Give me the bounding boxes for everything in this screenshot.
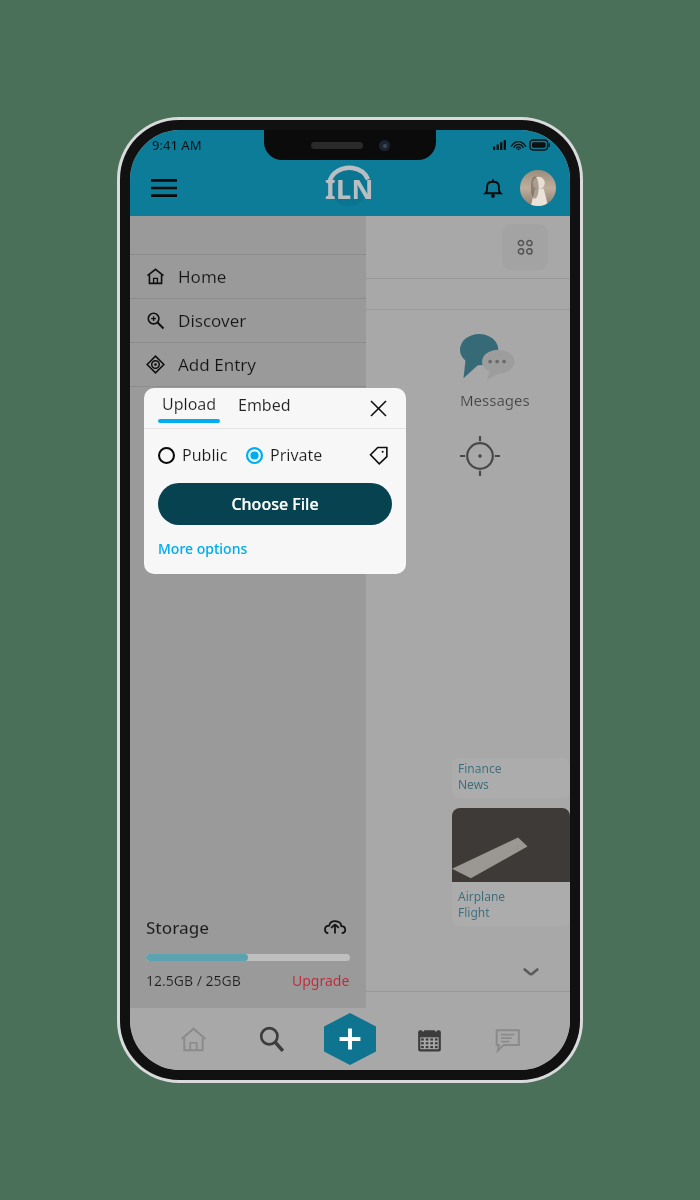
staticText: All files <box>178 397 235 420</box>
staticText: Home <box>178 265 227 288</box>
button[interactable]: Upgrade <box>292 971 350 990</box>
button[interactable]: Public <box>158 444 228 466</box>
staticText: Add Entry <box>178 353 256 376</box>
button[interactable]: Choose File <box>158 483 392 525</box>
button[interactable]: Upload to cloud <box>320 912 350 942</box>
staticText: Private <box>270 444 323 466</box>
button[interactable]: Home <box>130 255 366 298</box>
staticText: Upload <box>162 393 217 415</box>
button[interactable]: Private <box>246 444 323 466</box>
button[interactable]: Add <box>324 1013 376 1065</box>
button[interactable]: Upload <box>158 393 220 423</box>
staticText: Choose File <box>231 493 319 515</box>
button[interactable]: Grid view <box>502 224 548 270</box>
button[interactable]: Calendar <box>405 1015 453 1063</box>
button[interactable]: Search <box>247 1015 295 1063</box>
button[interactable]: Messages <box>483 1015 531 1063</box>
staticText: Storage <box>146 916 210 939</box>
button[interactable]: Add Entry <box>130 343 366 386</box>
staticText: More options <box>158 539 248 558</box>
staticText: Upgrade <box>292 971 350 990</box>
staticText: Public <box>182 444 228 466</box>
staticText: 12.5GB / 25GB <box>146 971 241 990</box>
button[interactable]: Tags <box>364 441 392 469</box>
button[interactable]: All files <box>130 387 366 430</box>
staticText: Finance News <box>458 760 502 792</box>
staticText: Discover <box>178 309 247 332</box>
staticText: Messages <box>460 390 530 410</box>
button[interactable]: Home <box>169 1015 217 1063</box>
staticText: Embed <box>238 394 291 416</box>
button[interactable]: Notifications <box>472 167 514 209</box>
button[interactable]: Discover <box>130 299 366 342</box>
button[interactable]: Open navigation menu <box>142 166 186 210</box>
button[interactable]: Embed <box>238 394 291 423</box>
button[interactable]: More options <box>158 539 248 558</box>
button[interactable]: Close <box>362 392 394 424</box>
staticText: 9:41 AM <box>152 136 202 154</box>
button[interactable]: Profile <box>520 170 556 206</box>
staticText: Airplane Flight <box>458 888 506 920</box>
staticText: ILN <box>325 170 375 207</box>
